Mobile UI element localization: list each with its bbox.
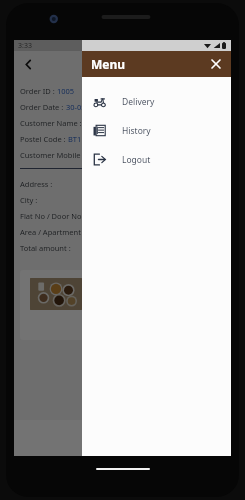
staticText: 07123: [87, 150, 109, 160]
staticText: Flat No / Door No :: [20, 211, 86, 221]
staticText: Aarav: [84, 118, 104, 128]
staticText: 1005: [57, 86, 75, 96]
staticText: Menu: [91, 56, 126, 72]
button[interactable]: Close menu: [207, 55, 225, 73]
staticText: Order Date :: [20, 102, 66, 112]
staticText: Customer Mobile :: [20, 150, 87, 160]
button[interactable]: History: [82, 116, 231, 145]
staticText: Total amount :: [20, 243, 71, 253]
staticText: Address :: [20, 179, 53, 189]
staticText: Order ID :: [20, 86, 57, 96]
button[interactable]: Delivery: [82, 87, 231, 116]
button[interactable]: [20, 270, 225, 340]
button[interactable]: Back: [18, 54, 38, 74]
staticText: Customer Name :: [20, 118, 84, 128]
staticText: My Order: [98, 57, 148, 72]
staticText: Area / Apartment :: [20, 227, 85, 237]
button[interactable]: Logout: [82, 145, 231, 174]
staticText: Postel Code :: [20, 134, 68, 144]
staticText: 30-05-2024: [66, 102, 106, 112]
staticText: BT11 8BY: [68, 134, 101, 144]
staticText: Delivery: [122, 96, 155, 108]
staticText: City :: [20, 195, 38, 205]
staticText: History: [122, 125, 151, 137]
staticText: Logout: [122, 154, 151, 166]
staticText: 3:33: [18, 41, 32, 51]
